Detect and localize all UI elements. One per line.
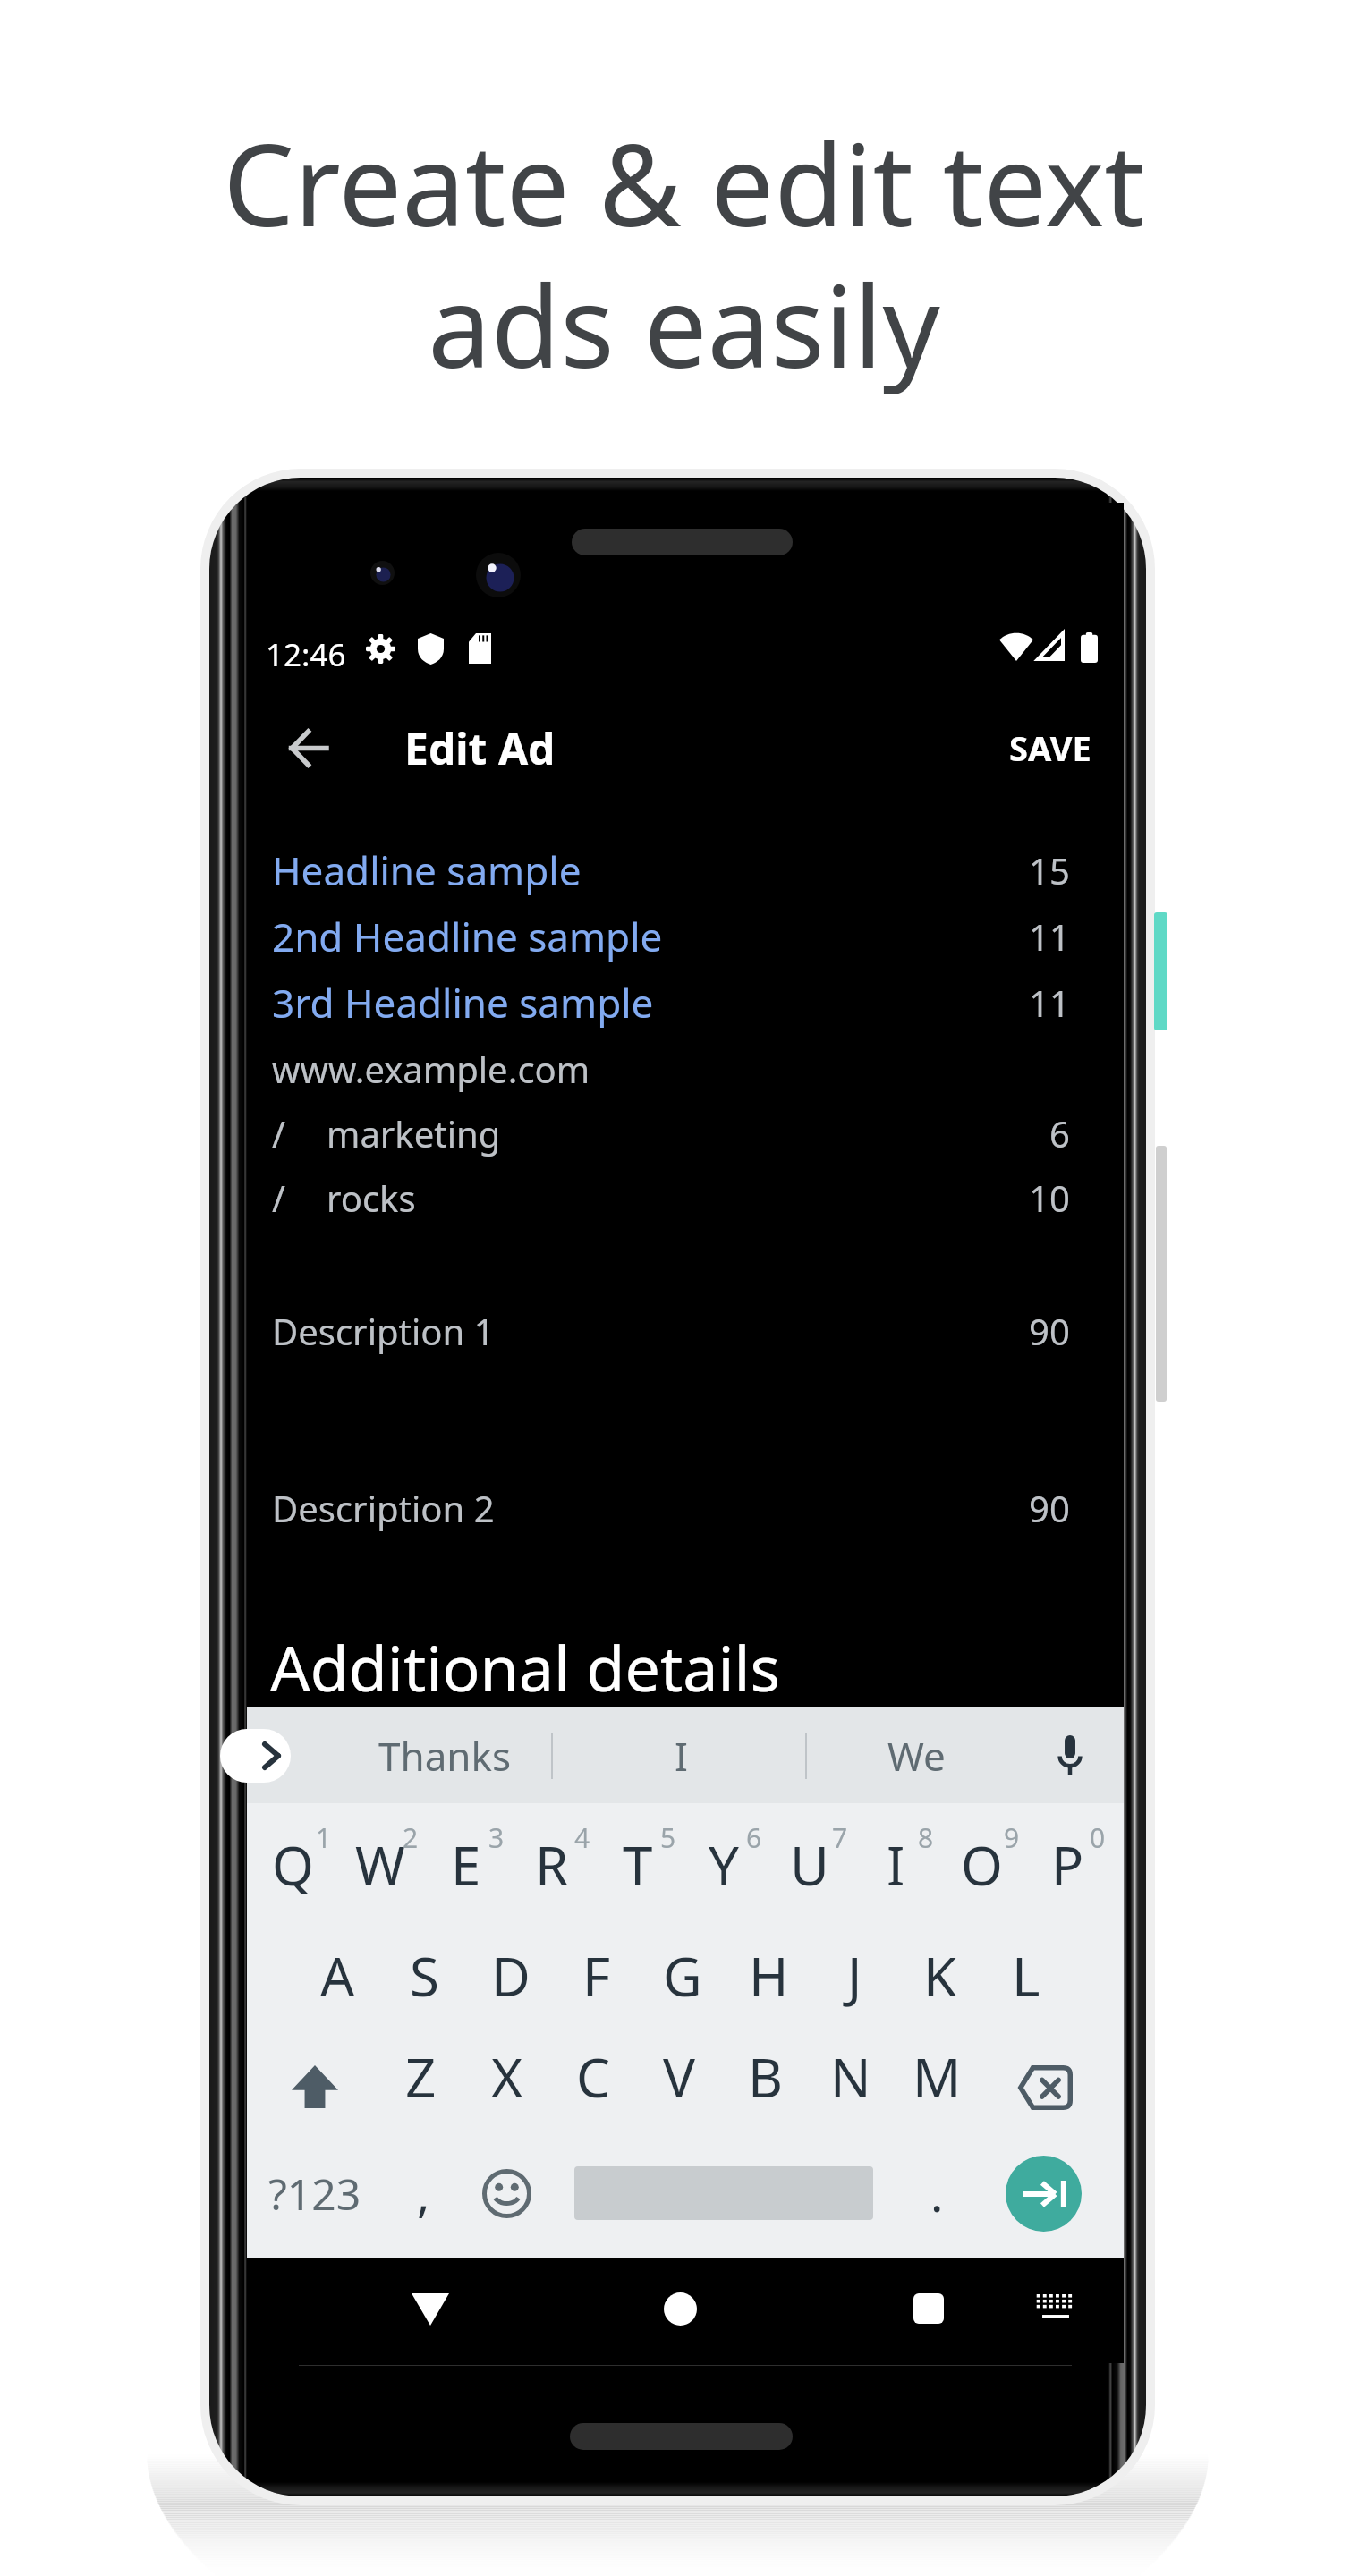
button[interactable]: K [897, 1923, 983, 2029]
button[interactable]: P [1024, 1812, 1110, 1918]
button[interactable]: Recents [875, 2264, 982, 2353]
staticText: 3rd Headline sample [272, 976, 654, 1030]
staticText: R [535, 1828, 569, 1902]
button[interactable]: G [640, 1923, 726, 2029]
staticText: 3 [488, 1819, 505, 1856]
staticText: 5 [660, 1819, 676, 1856]
staticText: H [749, 1939, 789, 2012]
staticText: T [623, 1828, 653, 1902]
staticText: 12:46 [266, 633, 346, 676]
button[interactable]: W [336, 1812, 423, 1918]
button[interactable]: V [636, 2023, 722, 2131]
button[interactable] [574, 2159, 873, 2227]
button[interactable]: . [904, 2157, 969, 2229]
staticText: W [355, 1828, 405, 1902]
button[interactable]: I [853, 1812, 938, 1918]
staticText: Thanks [378, 1729, 512, 1783]
staticText: / [272, 1109, 285, 1157]
button[interactable]: Back [263, 709, 352, 786]
button[interactable]: Thanks [352, 1707, 538, 1803]
button[interactable]: ?123 [261, 2157, 369, 2229]
button[interactable]: J [811, 1923, 897, 2029]
button[interactable]: Q [250, 1812, 336, 1918]
staticText: Edit Ad [404, 719, 556, 777]
staticText: J [847, 1939, 862, 2012]
staticText: rocks [327, 1174, 416, 1222]
staticText: 90 [1029, 1484, 1070, 1532]
button[interactable]: A [294, 1923, 381, 2029]
staticText: Additional details [270, 1624, 781, 1709]
button[interactable]: N [808, 2023, 894, 2131]
button[interactable]: D [468, 1923, 554, 2029]
button[interactable]: / [247, 1168, 1124, 1227]
button[interactable]: X [464, 2023, 550, 2131]
button[interactable]: Headline sample [247, 841, 1124, 900]
button[interactable]: 2nd Headline sample [247, 907, 1124, 966]
staticText: C [576, 2040, 610, 2114]
button[interactable]: E [423, 1812, 509, 1918]
button[interactable]: B [722, 2023, 808, 2131]
staticText: 10 [1029, 1174, 1070, 1222]
staticText: X [491, 2040, 523, 2114]
button[interactable]: Next [1006, 2156, 1082, 2232]
button[interactable]: SAVE [996, 708, 1105, 787]
staticText: 15 [1029, 846, 1070, 894]
staticText: G [663, 1939, 702, 2012]
button[interactable]: O [938, 1812, 1024, 1918]
staticText: www.example.com [272, 1045, 590, 1093]
staticText: Z [405, 2040, 437, 2114]
staticText: Description 2 [272, 1484, 495, 1532]
staticText: marketing [327, 1109, 501, 1157]
button[interactable]: www.example.com [247, 1039, 1124, 1098]
button[interactable]: Shift [247, 2023, 378, 2131]
button[interactable]: Switch keyboard [1002, 2264, 1109, 2353]
button[interactable]: Z [378, 2023, 464, 2131]
button[interactable]: F [554, 1923, 640, 2029]
staticText: O [961, 1828, 1003, 1902]
staticText: M [913, 2040, 962, 2114]
button[interactable]: M [894, 2023, 980, 2131]
button[interactable]: T [595, 1812, 681, 1918]
button[interactable]: Back [377, 2264, 484, 2353]
staticText: Headline sample [272, 843, 582, 897]
staticText: 4 [574, 1819, 590, 1856]
button[interactable]: C [550, 2023, 636, 2131]
staticText: SAVE [1009, 724, 1091, 771]
staticText: / [272, 1174, 285, 1222]
staticText: 9 [1004, 1819, 1020, 1856]
staticText: Y [709, 1828, 739, 1902]
button[interactable]: , [391, 2157, 455, 2229]
button[interactable]: H [726, 1923, 811, 2029]
button[interactable]: U [767, 1812, 853, 1918]
button[interactable]: S [381, 1923, 468, 2029]
button[interactable]: Description 1 [247, 1301, 1124, 1360]
staticText: We [887, 1729, 946, 1783]
button[interactable]: Backspace [980, 2023, 1124, 2131]
button[interactable]: Description 2 [247, 1479, 1124, 1538]
staticText: 6 [746, 1819, 762, 1856]
staticText: D [491, 1939, 531, 2012]
button[interactable]: Voice input [1016, 1707, 1124, 1803]
staticText: Q [272, 1828, 314, 1902]
staticText: V [663, 2040, 695, 2114]
staticText: 90 [1029, 1307, 1070, 1355]
button[interactable]: Emoji [465, 2157, 548, 2229]
button[interactable]: / [247, 1104, 1124, 1163]
staticText: , [417, 2160, 430, 2226]
button[interactable]: L [983, 1923, 1069, 2029]
staticText: B [748, 2040, 783, 2114]
staticText: Create & edit text [223, 106, 1145, 259]
staticText: L [1012, 1939, 1040, 2012]
button[interactable]: Home [626, 2264, 734, 2353]
button[interactable]: 3rd Headline sample [247, 973, 1124, 1032]
button[interactable]: Expand suggestions [220, 1729, 291, 1783]
staticText: 6 [1049, 1109, 1070, 1157]
button[interactable]: We [828, 1707, 1004, 1803]
staticText: Description 1 [272, 1307, 495, 1355]
button[interactable]: Y [681, 1812, 767, 1918]
staticText: 2nd Headline sample [272, 910, 663, 963]
button[interactable]: R [509, 1812, 595, 1918]
staticText: 11 [1029, 979, 1070, 1027]
button[interactable]: I [591, 1707, 770, 1803]
staticText: 8 [918, 1819, 934, 1856]
